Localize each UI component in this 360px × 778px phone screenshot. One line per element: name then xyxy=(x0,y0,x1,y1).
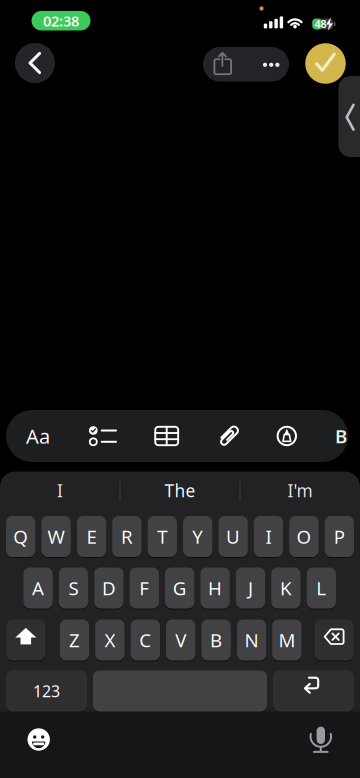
button[interactable]: Return xyxy=(273,670,354,711)
staticText: L xyxy=(316,576,326,600)
button[interactable]: Bold xyxy=(329,410,353,462)
staticText: F xyxy=(139,576,149,600)
button[interactable]: Done xyxy=(303,41,347,85)
button[interactable]: Checklist xyxy=(76,410,128,462)
button[interactable]: L xyxy=(307,567,336,608)
staticText: I xyxy=(57,479,63,502)
staticText: A xyxy=(32,576,44,600)
button[interactable]: The xyxy=(124,472,236,508)
button[interactable]: U xyxy=(218,516,248,557)
staticText: U xyxy=(226,524,240,549)
button[interactable]: M xyxy=(272,619,302,660)
button[interactable]: O xyxy=(289,516,319,557)
button[interactable]: More xyxy=(246,47,289,81)
button[interactable]: Markup xyxy=(261,410,313,462)
button[interactable]: Dictate xyxy=(299,711,343,767)
button[interactable]: Delete xyxy=(315,619,354,660)
staticText: Y xyxy=(192,524,203,549)
staticText: I'm xyxy=(287,479,312,502)
staticText: H xyxy=(208,576,222,600)
button[interactable]: W xyxy=(41,516,71,557)
staticText: C xyxy=(139,628,151,652)
staticText: Aa xyxy=(26,423,50,449)
staticText: W xyxy=(48,524,65,549)
staticText: The xyxy=(164,479,195,502)
staticText: B xyxy=(210,628,222,652)
staticText: K xyxy=(280,576,292,600)
button[interactable]: D xyxy=(94,567,124,608)
button[interactable]: Q xyxy=(6,516,35,557)
button[interactable]: 123 xyxy=(6,670,87,711)
staticText: G xyxy=(173,576,187,600)
staticText: B xyxy=(335,424,347,448)
button[interactable]: I xyxy=(4,472,116,508)
button[interactable]: I xyxy=(254,516,283,557)
button[interactable]: Back xyxy=(13,41,57,85)
staticText: 02:38 xyxy=(43,11,79,30)
button[interactable]: Emoji xyxy=(17,717,61,761)
staticText: V xyxy=(175,628,186,652)
staticText: D xyxy=(102,576,116,600)
staticText: T xyxy=(157,524,167,549)
button[interactable]: N xyxy=(237,619,266,660)
staticText: Z xyxy=(69,628,80,652)
button[interactable]: Y xyxy=(183,516,212,557)
button[interactable]: Space xyxy=(93,670,267,711)
staticText: M xyxy=(278,628,295,652)
button[interactable]: F xyxy=(130,567,159,608)
button[interactable]: Share xyxy=(203,47,246,81)
button[interactable]: A xyxy=(23,567,53,608)
button[interactable]: K xyxy=(271,567,301,608)
staticText: 48 xyxy=(314,17,326,31)
button[interactable]: B xyxy=(201,619,231,660)
staticText: J xyxy=(248,576,253,600)
button[interactable]: T xyxy=(148,516,177,557)
button[interactable]: Format xyxy=(10,410,66,462)
button[interactable]: 02:38 xyxy=(31,11,90,30)
button[interactable]: Z xyxy=(60,619,89,660)
button[interactable]: J xyxy=(236,567,265,608)
staticText: O xyxy=(296,524,311,549)
button[interactable]: G xyxy=(165,567,194,608)
staticText: S xyxy=(68,576,78,600)
button[interactable]: C xyxy=(131,619,160,660)
button[interactable]: Attach xyxy=(203,410,255,462)
button[interactable]: H xyxy=(200,567,230,608)
button[interactable]: E xyxy=(77,516,106,557)
button[interactable]: S xyxy=(59,567,88,608)
staticText: N xyxy=(244,628,258,652)
button[interactable]: P xyxy=(325,516,354,557)
button[interactable]: Table xyxy=(141,410,193,462)
staticText: I xyxy=(265,524,271,549)
staticText: Q xyxy=(13,524,28,549)
button[interactable]: X xyxy=(95,619,125,660)
button[interactable]: Slide Over xyxy=(338,76,360,157)
staticText: R xyxy=(121,524,133,549)
staticText: E xyxy=(86,524,96,549)
button[interactable]: I'm xyxy=(244,472,356,508)
staticText: 123 xyxy=(33,680,60,702)
staticText: X xyxy=(104,628,115,652)
button[interactable]: V xyxy=(166,619,195,660)
staticText: P xyxy=(334,524,345,549)
button[interactable]: Shift xyxy=(6,619,45,660)
button[interactable]: R xyxy=(112,516,142,557)
